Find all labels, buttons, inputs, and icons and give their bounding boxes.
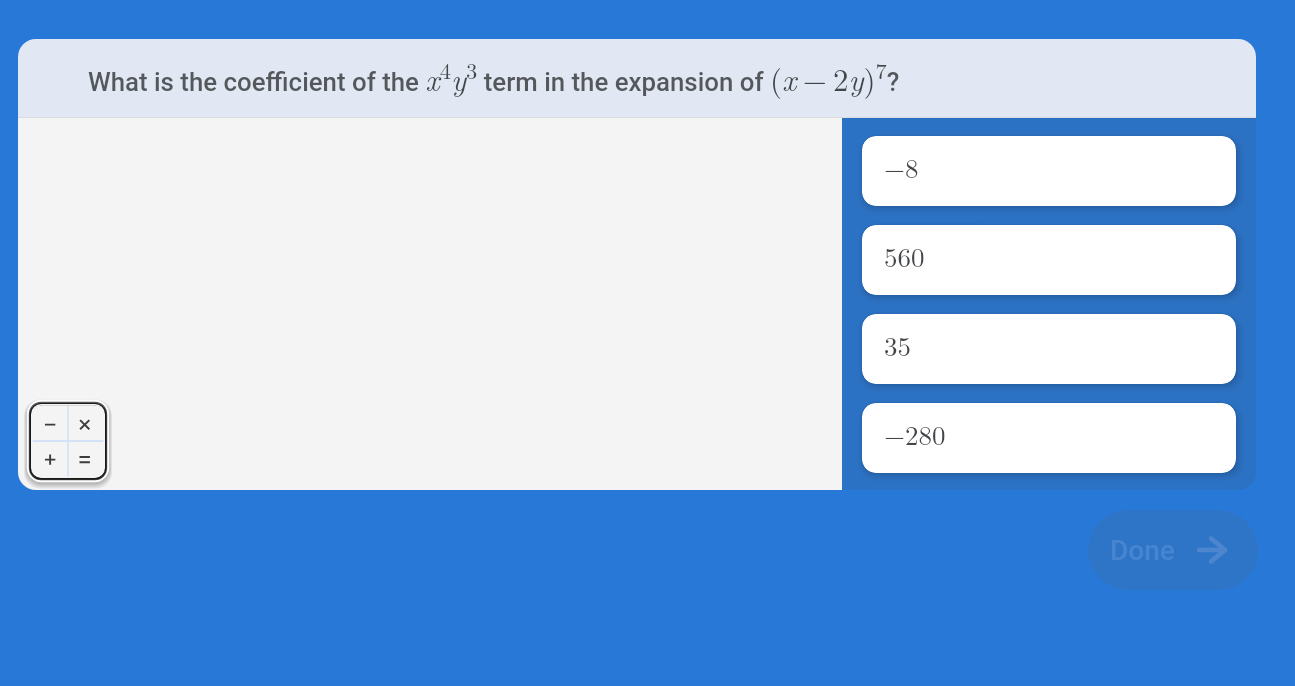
button[interactable]: Math keyboard bbox=[27, 400, 109, 482]
staticText: −8 bbox=[884, 148, 919, 186]
button[interactable]: Done bbox=[1088, 510, 1258, 590]
button[interactable]: 560 bbox=[862, 225, 1236, 295]
button[interactable]: 35 bbox=[862, 314, 1236, 384]
staticText: −280 bbox=[884, 415, 946, 453]
staticText: Done bbox=[1110, 534, 1175, 567]
staticText: 560 bbox=[884, 237, 925, 275]
button[interactable]: −8 bbox=[862, 136, 1236, 206]
staticText: What is the coefficient of the x4y3 term… bbox=[88, 54, 900, 100]
staticText: 35 bbox=[884, 326, 911, 364]
button[interactable]: −280 bbox=[862, 403, 1236, 473]
